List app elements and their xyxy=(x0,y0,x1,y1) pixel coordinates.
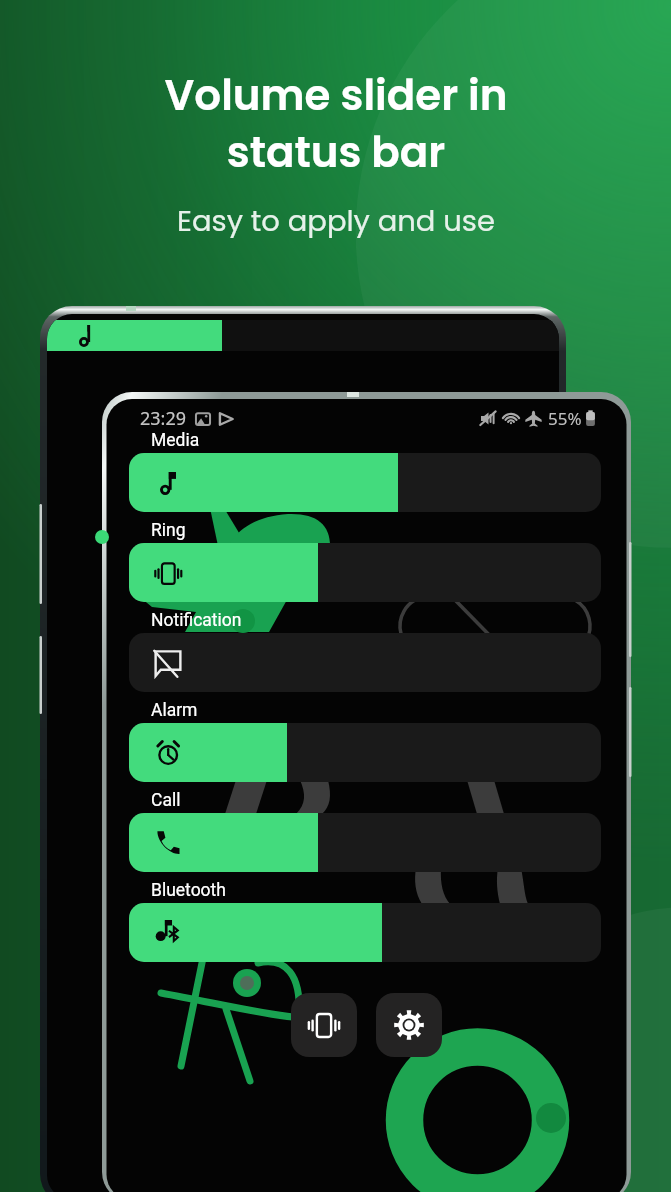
staticText: Volume slider in status bar xyxy=(164,66,508,181)
staticText: Bluetooth xyxy=(151,880,226,901)
button[interactable] xyxy=(129,543,601,602)
button[interactable] xyxy=(129,813,601,872)
staticText: Ring xyxy=(151,520,186,541)
button[interactable] xyxy=(129,453,601,512)
staticText: Call xyxy=(151,790,181,811)
staticText: 23:29 xyxy=(140,406,187,431)
button[interactable]: Vibrate mode xyxy=(291,993,357,1057)
staticText: Easy to apply and use xyxy=(177,201,495,242)
staticText: 55% xyxy=(548,407,582,430)
button[interactable] xyxy=(129,723,601,782)
button[interactable] xyxy=(129,903,601,962)
staticText: Notification xyxy=(151,610,242,631)
staticText: Alarm xyxy=(151,700,198,721)
button[interactable]: Settings xyxy=(376,993,442,1057)
staticText: Media xyxy=(151,430,200,451)
button[interactable] xyxy=(129,633,601,692)
